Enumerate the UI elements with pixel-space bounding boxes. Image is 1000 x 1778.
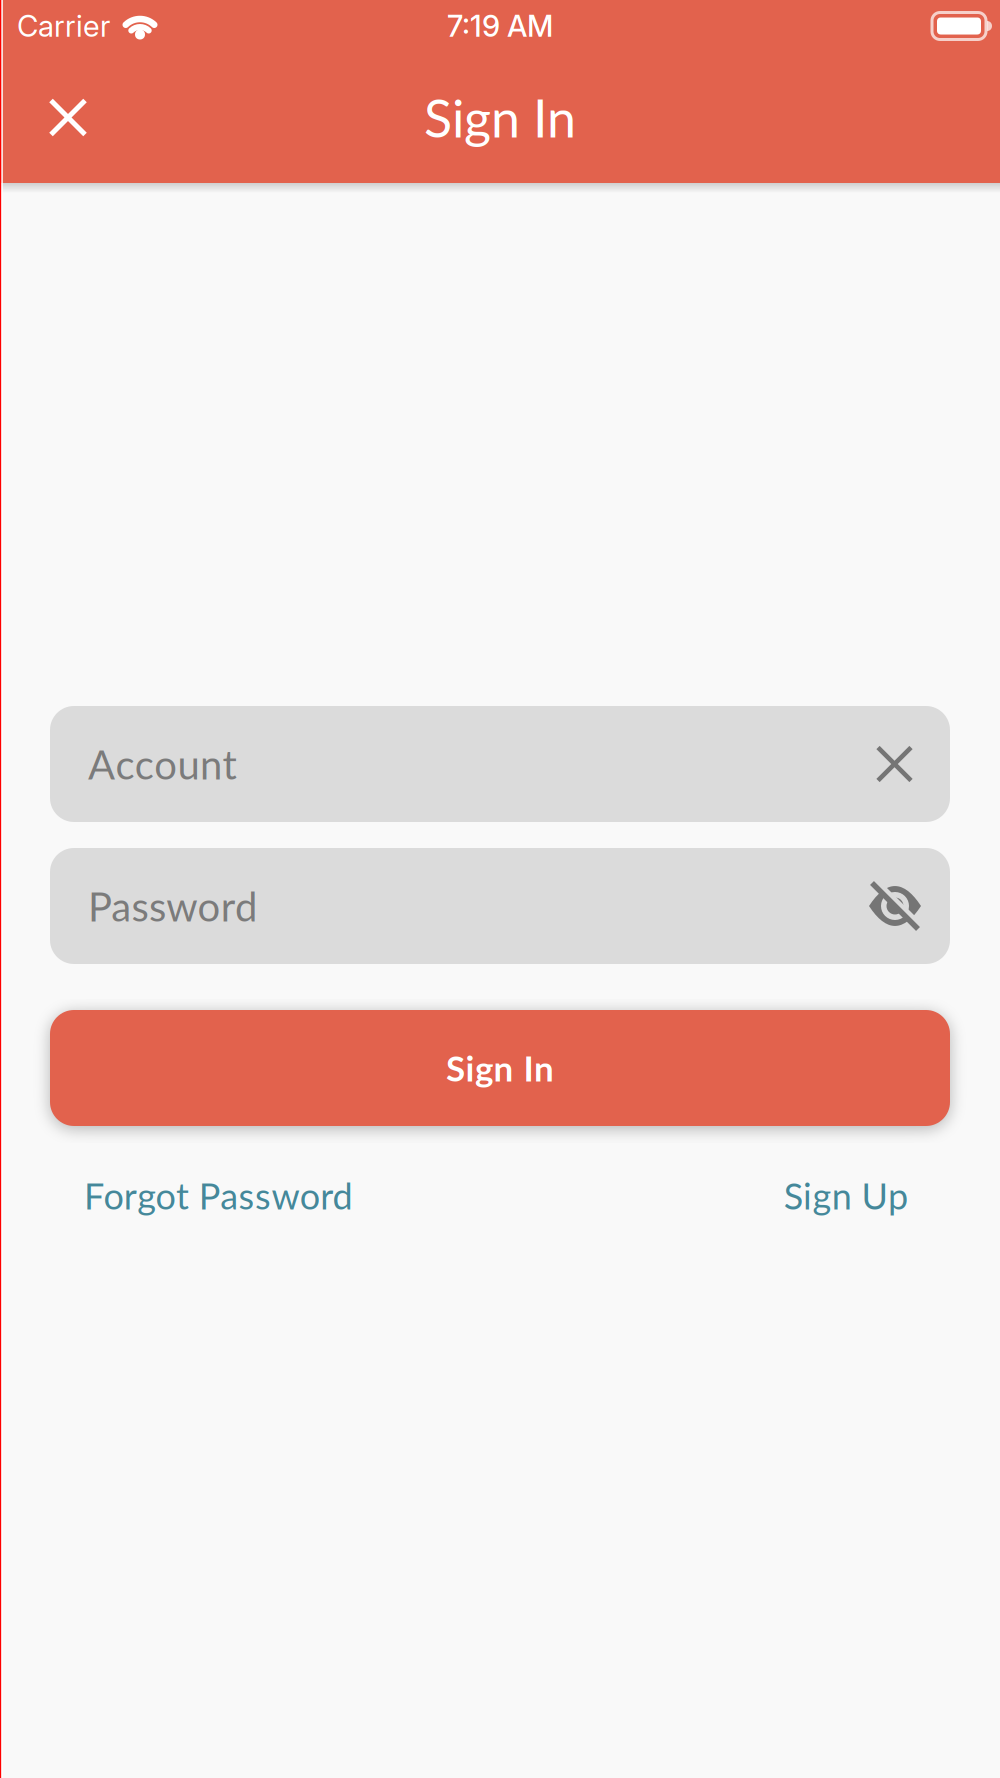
staticText: Account xyxy=(88,740,236,788)
button[interactable]: Sign Up xyxy=(784,1174,908,1217)
staticText: Sign In xyxy=(446,1047,554,1089)
button[interactable]: Show password xyxy=(868,882,922,930)
button[interactable]: Clear text xyxy=(878,747,911,780)
staticText: Sign Up xyxy=(784,1174,908,1217)
button[interactable]: Close xyxy=(0,100,105,134)
staticText: Password xyxy=(88,882,257,930)
button[interactable]: Sign In xyxy=(50,1010,950,1126)
staticText: Carrier xyxy=(17,8,110,44)
staticText: Forgot Password xyxy=(84,1174,353,1217)
button[interactable]: Forgot Password xyxy=(84,1174,353,1217)
staticText: Sign In xyxy=(424,86,576,149)
staticText: 7:19 AM xyxy=(447,8,553,44)
